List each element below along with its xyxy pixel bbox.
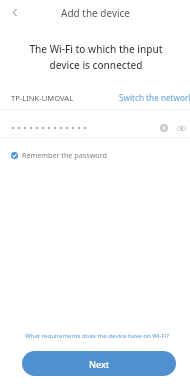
button[interactable]: Next	[22, 351, 176, 376]
button[interactable]: Wi-Fi password	[0, 110, 150, 137]
staticText: Remember the password	[22, 150, 107, 160]
button[interactable]: Back	[7, 5, 21, 19]
button[interactable]: Remember the password	[11, 148, 107, 162]
button[interactable]: What requirements does the device have o…	[21, 329, 173, 341]
staticText: Add the device	[61, 6, 131, 20]
staticText: Next	[89, 358, 110, 370]
staticText: The Wi-Fi to which the input device is c…	[13, 42, 179, 72]
button[interactable]: Show password	[173, 120, 189, 136]
button[interactable]: Switch the network	[110, 89, 190, 106]
staticText: TP-LINK-UMOVAL	[11, 93, 74, 103]
staticText: Switch the network	[119, 92, 190, 103]
staticText: What requirements does the device have o…	[25, 331, 169, 339]
button[interactable]: Clear text	[156, 120, 172, 136]
